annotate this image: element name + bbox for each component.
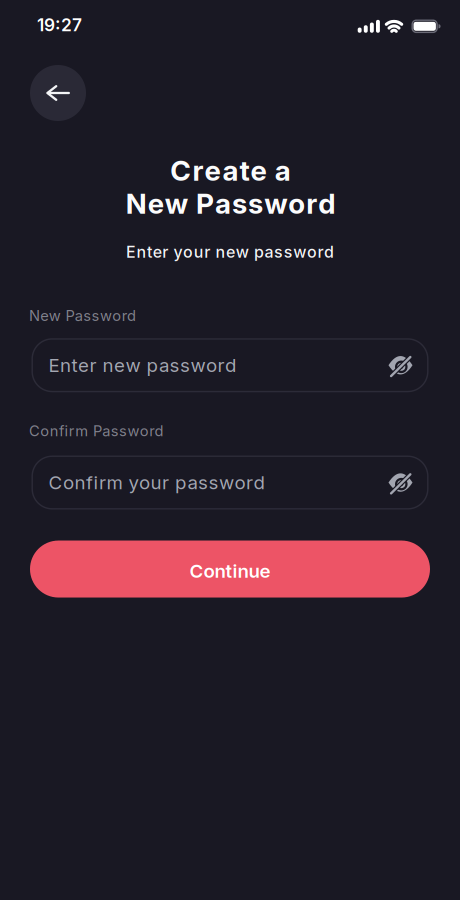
button[interactable]: Enter new password (31, 338, 428, 392)
staticText: Enter new password (48, 354, 236, 376)
staticText: Create a New Password (125, 154, 335, 220)
staticText: 19:27 (37, 15, 82, 35)
staticText: Confirm Password (29, 422, 164, 439)
button[interactable]: Confirm your password (31, 455, 428, 509)
staticText: Continue (189, 560, 270, 582)
staticText: New Password (29, 307, 136, 324)
staticText: Confirm your password (48, 471, 264, 493)
button[interactable]: Back (30, 65, 86, 121)
button[interactable]: Show password (388, 353, 412, 377)
button[interactable]: Show password (388, 470, 412, 494)
staticText: Enter your new password (126, 243, 334, 261)
button[interactable]: Continue (30, 540, 430, 597)
